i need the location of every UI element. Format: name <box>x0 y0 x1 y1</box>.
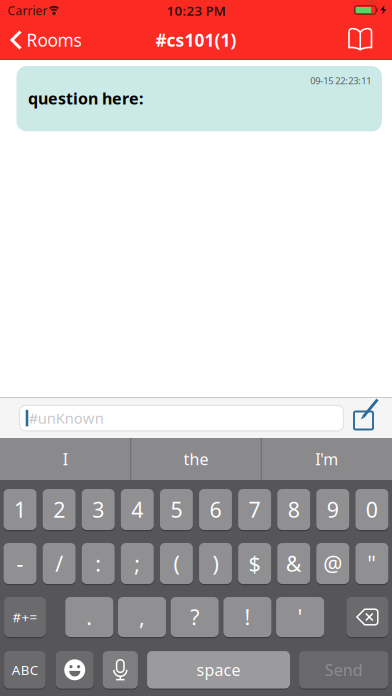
button[interactable]: ' <box>276 596 324 638</box>
staticText: 6 <box>209 495 221 524</box>
staticText: ! <box>244 603 250 631</box>
button[interactable] <box>346 596 388 638</box>
button[interactable]: 7 <box>238 488 271 531</box>
staticText: ) <box>212 549 218 578</box>
staticText: #cs101(1) <box>155 28 236 51</box>
staticText: ? <box>190 603 199 631</box>
button[interactable]: 1 <box>4 488 36 531</box>
button[interactable]: . <box>65 596 113 638</box>
staticText: 9 <box>327 495 339 524</box>
button[interactable]: & <box>277 542 310 585</box>
staticText: " <box>367 549 376 578</box>
staticText: 3 <box>92 495 104 524</box>
button[interactable] <box>56 650 94 689</box>
staticText: 1 <box>14 495 26 524</box>
button[interactable]: @ <box>316 542 349 585</box>
button[interactable]: 5 <box>160 488 193 531</box>
staticText: 0 <box>366 495 378 524</box>
button[interactable]: Rooms <box>0 20 100 60</box>
button[interactable]: $ <box>238 542 271 585</box>
staticText: . <box>86 603 92 631</box>
button[interactable]: ) <box>199 542 232 585</box>
staticText: question here: <box>28 88 143 109</box>
staticText: #+= <box>12 608 37 626</box>
staticText: space <box>197 659 241 680</box>
staticText: , <box>139 603 145 631</box>
staticText: ( <box>173 549 179 578</box>
staticText: Rooms <box>26 28 81 51</box>
button[interactable]: 4 <box>121 488 154 531</box>
staticText: 09-15 22:23:11 <box>310 74 371 87</box>
button[interactable]: the <box>132 438 260 480</box>
staticText: Send <box>325 659 363 680</box>
staticText: : <box>95 549 101 578</box>
button[interactable]: ABC <box>4 650 45 689</box>
button[interactable]: 3 <box>82 488 115 531</box>
staticText: Carrier <box>7 2 47 18</box>
staticText: - <box>17 549 24 578</box>
button[interactable]: 0 <box>355 488 388 531</box>
staticText: 4 <box>131 495 143 524</box>
staticText: I'm <box>315 448 338 470</box>
staticText: 10:23 PM <box>166 2 225 19</box>
button[interactable]: I <box>1 438 129 480</box>
button[interactable]: ; <box>121 542 154 585</box>
button[interactable] <box>103 650 138 689</box>
button[interactable]: ! <box>223 596 271 638</box>
staticText: ' <box>298 603 303 631</box>
staticText: I <box>63 448 68 470</box>
button[interactable] <box>349 396 383 434</box>
staticText: ; <box>134 549 140 578</box>
button[interactable]: 09-15 22:23:11 <box>16 66 382 131</box>
button[interactable]: 8 <box>277 488 310 531</box>
staticText: 2 <box>53 495 65 524</box>
button[interactable]: : <box>82 542 115 585</box>
button[interactable]: Send <box>299 650 388 689</box>
staticText: ABC <box>12 661 38 679</box>
staticText: $ <box>249 549 261 578</box>
button[interactable]: , <box>118 596 166 638</box>
staticText: @ <box>323 549 342 578</box>
staticText: 8 <box>288 495 300 524</box>
staticText: the <box>183 448 208 470</box>
button[interactable]: #+= <box>4 596 46 638</box>
staticText: / <box>55 549 63 578</box>
button[interactable]: - <box>4 542 36 585</box>
button[interactable]: ? <box>171 596 219 638</box>
button[interactable]: 9 <box>316 488 349 531</box>
staticText: 5 <box>170 495 182 524</box>
staticText: #unKnown <box>29 408 104 428</box>
button[interactable]: 6 <box>199 488 232 531</box>
button[interactable]: space <box>147 650 290 689</box>
button[interactable]: I'm <box>263 438 391 480</box>
button[interactable]: 2 <box>43 488 76 531</box>
staticText: 7 <box>249 495 261 524</box>
button[interactable]: / <box>43 542 76 585</box>
button[interactable]: " <box>355 542 388 585</box>
button[interactable] <box>340 20 380 60</box>
button[interactable]: ( <box>160 542 193 585</box>
staticText: & <box>286 549 302 578</box>
